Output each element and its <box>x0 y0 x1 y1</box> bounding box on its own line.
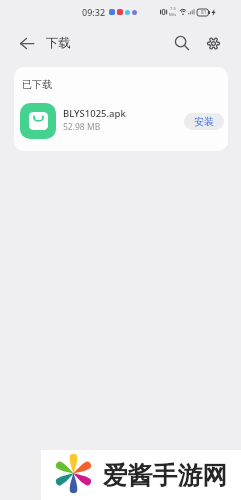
staticText: 安装 <box>194 115 214 128</box>
staticText: 下载 <box>46 35 71 51</box>
staticText: M/s <box>169 12 177 18</box>
staticText: 已下载 <box>22 78 52 91</box>
staticText: 7.5 <box>170 6 176 12</box>
staticText: BLYS1025.apk <box>63 107 126 120</box>
staticText: 81 <box>201 9 207 16</box>
button[interactable]: 安装 <box>184 113 224 130</box>
button[interactable]: Back <box>14 30 40 56</box>
staticText: 52.98 MB <box>63 121 101 133</box>
staticText: 爱酱手游网 <box>103 460 227 491</box>
button[interactable]: Search <box>169 30 195 56</box>
staticText: 09:32 <box>82 6 106 18</box>
button[interactable]: Settings <box>200 30 226 56</box>
